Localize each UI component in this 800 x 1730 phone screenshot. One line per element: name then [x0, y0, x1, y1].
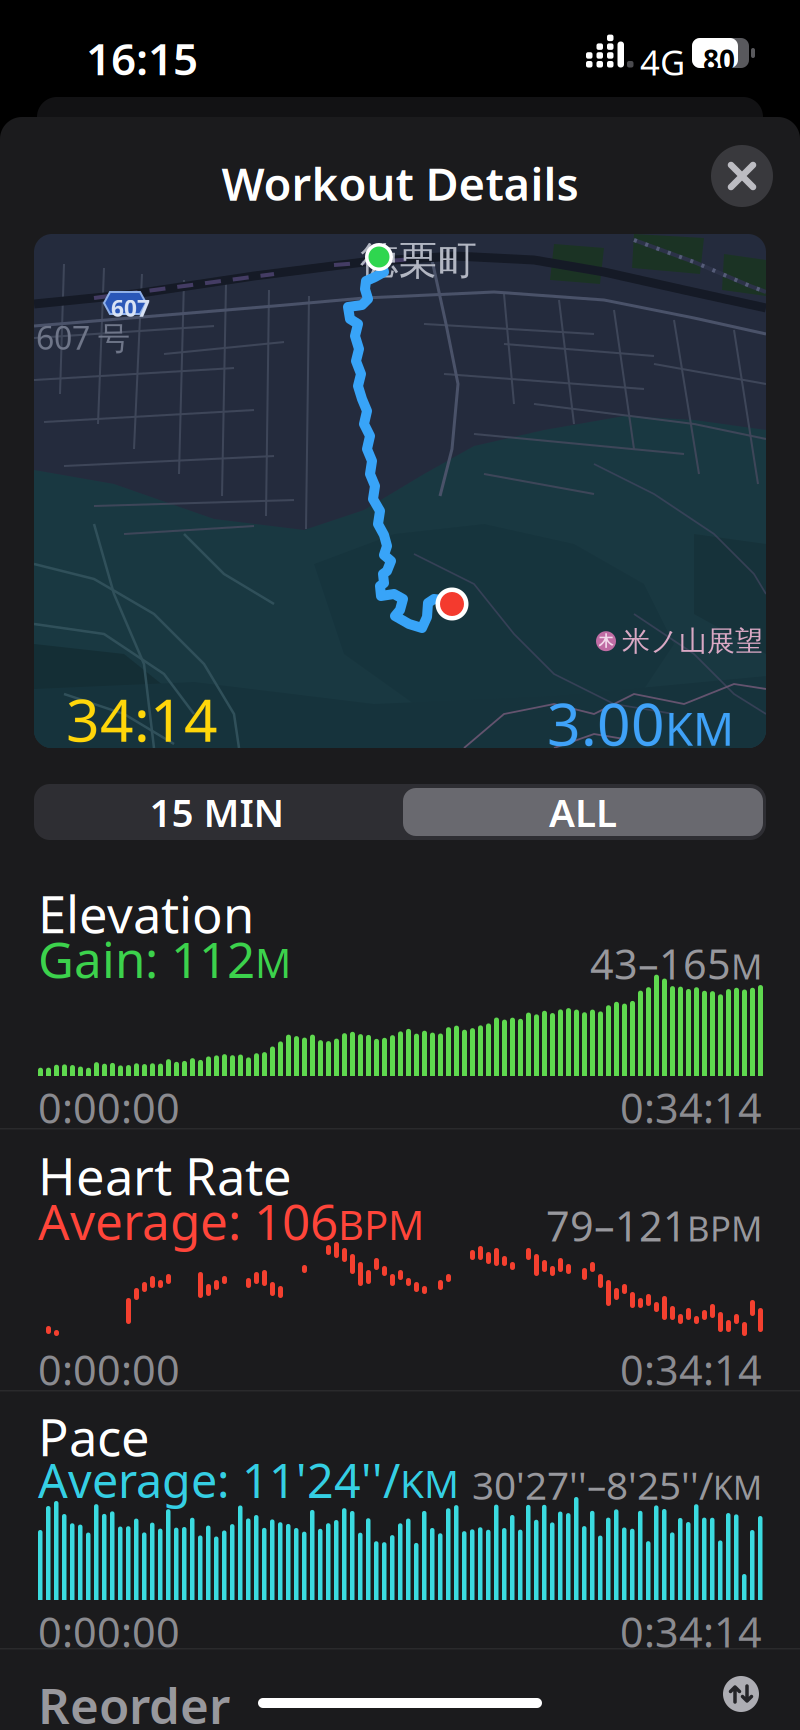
staticText: 木 [598, 632, 613, 650]
staticText: 34:14 [66, 680, 218, 758]
staticText: BPM [687, 1205, 762, 1251]
staticText: KM [713, 1466, 762, 1508]
staticText: 0:34:14 [620, 1342, 762, 1397]
staticText: 607 号 [36, 316, 130, 358]
staticText: Pace [38, 1403, 150, 1470]
staticText: 4G [640, 39, 685, 85]
staticText: 0:00:00 [38, 1604, 180, 1659]
staticText: M [731, 943, 762, 989]
staticText: 43–165 [590, 936, 731, 991]
staticText: 0:00:00 [38, 1080, 180, 1135]
staticText: 15 MIN [149, 786, 284, 838]
staticText: 0:34:14 [620, 1604, 762, 1659]
staticText: 0:00:00 [38, 1342, 180, 1397]
button[interactable]: Close [711, 145, 773, 207]
staticText: BPM [338, 1198, 424, 1251]
staticText: Average: 106 [38, 1188, 338, 1253]
staticText: M [255, 936, 291, 989]
button[interactable]: ALL [403, 788, 763, 836]
button[interactable]: 15 MIN [34, 784, 400, 840]
staticText: 80 [703, 41, 735, 78]
staticText: 米ノ山展望 [622, 624, 763, 658]
staticText: Average: 11'24''/ [38, 1449, 400, 1511]
staticText: 0:34:14 [620, 1080, 762, 1135]
button[interactable]: Reorder [723, 1676, 759, 1712]
staticText: 607 [111, 293, 150, 323]
staticText: 79–121 [546, 1198, 687, 1253]
staticText: 30'27''–8'25''/ [472, 1459, 713, 1510]
staticText: ALL [549, 786, 617, 838]
staticText: KM [400, 1457, 459, 1509]
staticText: 徳栗町 [360, 237, 477, 284]
staticText: Elevation [38, 880, 254, 947]
staticText: Gain: 112 [38, 926, 255, 991]
staticText: 16:15 [86, 29, 198, 87]
staticText: 3.00 [547, 684, 665, 762]
staticText: Reorder [38, 1672, 230, 1730]
staticText: KM [665, 698, 734, 758]
staticText: Heart Rate [38, 1142, 292, 1209]
staticText: Workout Details [221, 153, 578, 213]
